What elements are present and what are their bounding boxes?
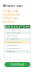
staticText: Next billing date bbox=[6, 51, 15, 52]
staticText: Account holder name bbox=[6, 29, 21, 31]
button[interactable]: Continue bbox=[4, 62, 30, 67]
staticText: Reference id number bbox=[6, 32, 21, 34]
staticText: Payment method used bbox=[6, 48, 21, 49]
staticText: Summary of terms bbox=[4, 25, 30, 28]
staticText: Please read below terms before you proce… bbox=[2, 9, 19, 24]
staticText: Continue bbox=[10, 63, 24, 66]
staticText: Remaining balance bbox=[6, 45, 19, 46]
staticText: Current plan status bbox=[6, 38, 19, 40]
staticText: Date of submission bbox=[6, 35, 18, 37]
staticText: Total amount due now bbox=[6, 41, 20, 43]
staticText: Welcome user bbox=[2, 4, 22, 8]
